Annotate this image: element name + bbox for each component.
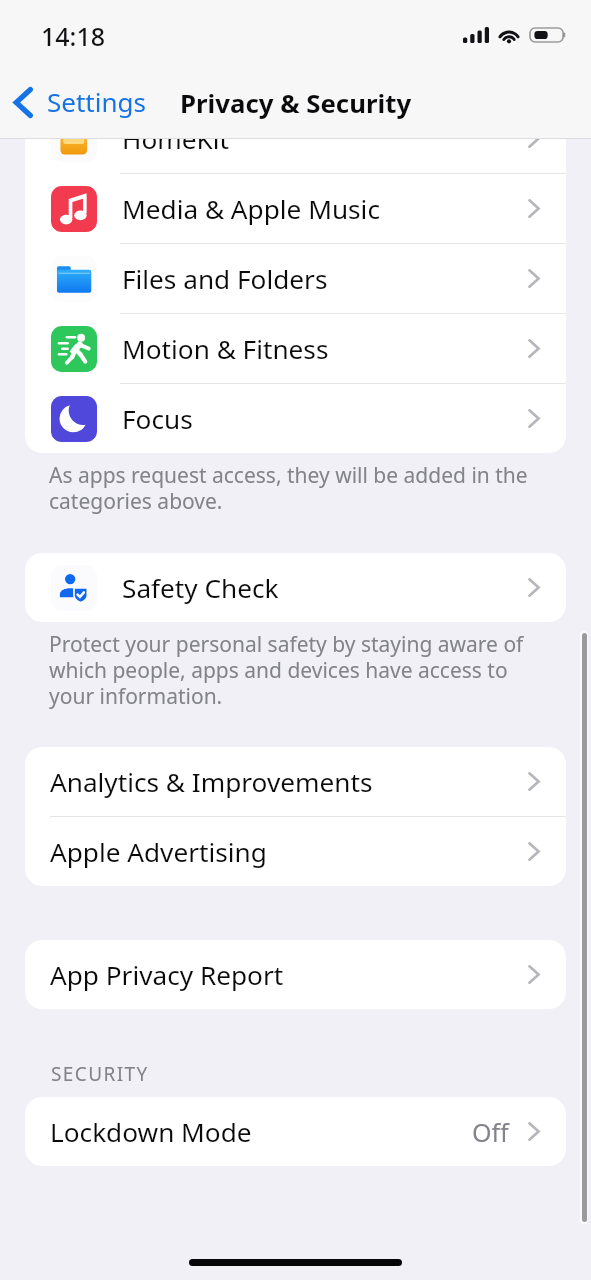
staticText: Motion & Fitness (122, 331, 528, 367)
button[interactable]: Focus (25, 384, 566, 453)
staticText: Media & Apple Music (122, 191, 528, 227)
button[interactable]: Apple Advertising (25, 817, 566, 886)
button[interactable]: Media & Apple Music (25, 174, 566, 244)
staticText: Files and Folders (122, 261, 528, 297)
button[interactable]: App Privacy Report (25, 940, 566, 1009)
staticText: Protect your personal safety by staying … (49, 630, 530, 711)
staticText: Settings (47, 84, 146, 119)
button[interactable]: Lockdown Mode (25, 1097, 566, 1166)
staticText: Analytics & Improvements (50, 764, 528, 800)
button[interactable]: Files and Folders (25, 244, 566, 314)
staticText: Safety Check (122, 570, 528, 606)
button[interactable]: Safety Check (25, 553, 566, 622)
button[interactable]: Back to Settings (0, 79, 156, 126)
staticText: Focus (122, 401, 528, 437)
button[interactable]: Motion & Fitness (25, 314, 566, 384)
button[interactable]: Analytics & Improvements (25, 747, 566, 817)
staticText: HomeKit (122, 138, 528, 157)
staticText: Lockdown Mode (50, 1114, 472, 1150)
staticText: 14:18 (41, 19, 106, 53)
staticText: App Privacy Report (50, 957, 528, 993)
staticText: As apps request access, they will be add… (49, 461, 530, 516)
staticText: Privacy & Security (180, 85, 412, 120)
staticText: SECURITY (51, 1061, 149, 1087)
staticText: Apple Advertising (50, 834, 528, 870)
staticText: Off (472, 1115, 509, 1149)
button[interactable]: HomeKit (25, 138, 566, 174)
